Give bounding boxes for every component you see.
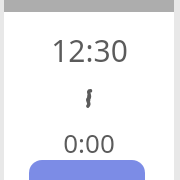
staticText: 12:30 xyxy=(51,30,128,71)
button[interactable]: Start timer xyxy=(29,160,145,180)
staticText: 0:00 xyxy=(63,125,115,160)
